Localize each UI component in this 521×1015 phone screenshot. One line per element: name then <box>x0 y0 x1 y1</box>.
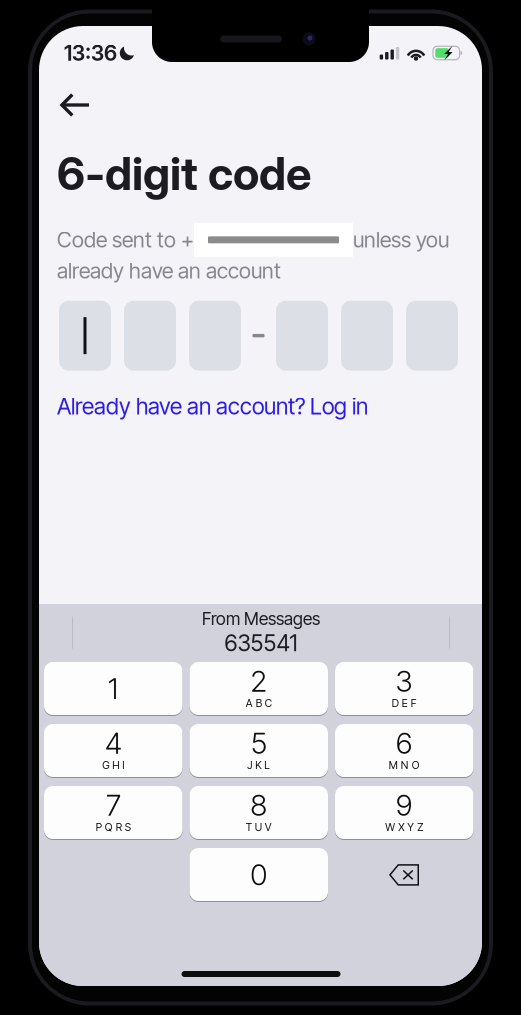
staticText: A B C <box>246 696 272 709</box>
staticText: 6 <box>396 725 413 761</box>
staticText: From Messages <box>202 608 320 629</box>
staticText: 1 <box>108 671 119 706</box>
staticText: 4 <box>105 725 122 761</box>
button[interactable]: Back <box>39 80 109 132</box>
button[interactable]: 0 <box>189 848 328 902</box>
staticText: 9 <box>396 787 413 823</box>
staticText: J K L <box>247 758 270 771</box>
staticText: Code sent to + <box>57 227 194 253</box>
staticText: already have an account <box>57 258 281 284</box>
staticText: unless you <box>353 227 449 253</box>
button[interactable]: 6 <box>335 724 473 778</box>
button[interactable]: 9 <box>335 786 473 840</box>
button[interactable]: 3 <box>335 662 473 716</box>
button[interactable]: 2 <box>189 662 328 716</box>
button[interactable]: 7 <box>44 786 182 840</box>
staticText: 3 <box>395 663 413 699</box>
staticText: P Q R S <box>96 820 131 833</box>
button[interactable]: 4 <box>44 724 182 778</box>
staticText: 635541 <box>224 629 297 657</box>
staticText: 7 <box>106 787 121 823</box>
staticText: 8 <box>250 787 267 823</box>
staticText: 0 <box>250 857 267 892</box>
button[interactable]: 1 <box>44 662 182 716</box>
button[interactable]: 5 <box>189 724 328 778</box>
staticText: 2 <box>250 663 267 699</box>
staticText: W X Y Z <box>385 820 423 833</box>
staticText: 6-digit code <box>57 146 311 201</box>
staticText: T U V <box>246 820 272 833</box>
staticText: Already have an account? Log in <box>57 393 368 420</box>
button[interactable]: Delete <box>335 848 473 901</box>
staticText: 13:36 <box>64 40 117 66</box>
staticText: M N O <box>389 758 420 771</box>
button[interactable]: Already have an account? Log in <box>39 371 386 426</box>
button[interactable]: 8 <box>189 786 328 840</box>
staticText: D E F <box>392 696 417 709</box>
staticText: 5 <box>251 725 267 761</box>
staticText: G H I <box>102 758 124 771</box>
